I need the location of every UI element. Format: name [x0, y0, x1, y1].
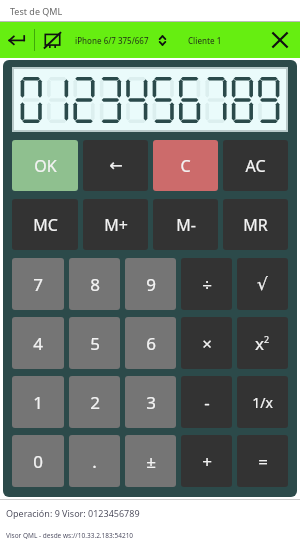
button[interactable]: iPhone 6/7 375/667	[75, 22, 168, 58]
staticText: 9	[146, 273, 156, 296]
staticText: ÷	[202, 273, 212, 296]
staticText: 5	[90, 332, 100, 355]
staticText: -	[204, 391, 210, 414]
staticText: 0	[33, 450, 43, 473]
staticText: M-	[176, 214, 196, 236]
staticText: Test de QML	[10, 5, 63, 17]
button[interactable]: M+	[83, 199, 148, 250]
button[interactable]: 1	[12, 376, 64, 428]
button[interactable]: Toggle screen	[35, 22, 69, 58]
button[interactable]: 7	[12, 258, 64, 310]
button[interactable]: AC	[223, 140, 288, 191]
button[interactable]: 1/x	[237, 376, 288, 428]
button[interactable]: +	[181, 435, 232, 487]
staticText: ×	[202, 332, 212, 355]
staticText: MC	[33, 214, 58, 236]
staticText: √	[257, 274, 268, 294]
staticText: MR	[243, 214, 268, 236]
staticText: 2	[90, 391, 100, 414]
button[interactable]: 8	[69, 258, 120, 310]
button[interactable]: MC	[12, 199, 78, 250]
button[interactable]: ×	[181, 317, 232, 369]
button[interactable]: √	[237, 258, 288, 310]
staticText: +	[202, 450, 212, 473]
staticText: Operación: 9 Visor: 0123456789	[6, 507, 140, 519]
staticText: 1/x	[252, 393, 273, 412]
button[interactable]: MR	[223, 199, 288, 250]
staticText: 1	[33, 391, 43, 414]
staticText: Visor QML - desde ws://10.33.2.183:54210	[6, 531, 134, 540]
button[interactable]: .	[69, 435, 120, 487]
staticText: iPhone 6/7 375/667	[75, 35, 149, 46]
button[interactable]: M-	[153, 199, 218, 250]
button[interactable]: OK	[12, 140, 78, 191]
button[interactable]: Cliente 1	[188, 35, 222, 46]
button[interactable]: C	[153, 140, 218, 191]
button[interactable]: Back	[0, 22, 34, 58]
button[interactable]: Close	[260, 22, 300, 58]
button[interactable]: -	[181, 376, 232, 428]
staticText: OK	[34, 155, 57, 177]
staticText: 2	[264, 333, 270, 345]
staticText: 7	[33, 273, 43, 296]
button[interactable]: ÷	[181, 258, 232, 310]
button[interactable]: ←	[83, 140, 148, 191]
button[interactable]: 0	[12, 435, 64, 487]
staticText: ←	[109, 156, 123, 175]
staticText: M+	[104, 214, 128, 236]
staticText: =	[258, 450, 268, 473]
staticText: 4	[33, 332, 43, 355]
button[interactable]: x	[237, 317, 288, 369]
button[interactable]: 2	[69, 376, 120, 428]
staticText: .	[92, 450, 97, 473]
button[interactable]: 3	[125, 376, 176, 428]
button[interactable]: 4	[12, 317, 64, 369]
staticText: ±	[146, 450, 156, 473]
button[interactable]: =	[237, 435, 288, 487]
staticText: 8	[90, 273, 100, 296]
staticText: C	[180, 155, 191, 177]
button[interactable]: 6	[125, 317, 176, 369]
staticText: x	[255, 332, 264, 355]
staticText: 6	[146, 332, 156, 355]
button[interactable]: ±	[125, 435, 176, 487]
staticText: 3	[146, 391, 156, 414]
staticText: AC	[245, 155, 266, 177]
button[interactable]: 5	[69, 317, 120, 369]
button[interactable]: 9	[125, 258, 176, 310]
